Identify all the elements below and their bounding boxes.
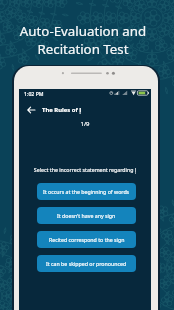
button[interactable]: It doesn't have any sign (37, 207, 136, 224)
button[interactable]: Back (24, 103, 37, 116)
button[interactable]: It occurs at the beginning of words (37, 183, 136, 200)
staticText: It occurs at the beginning of words (43, 188, 130, 195)
staticText: Recited correspond to the sign (49, 236, 125, 243)
staticText: 1:02 PM (24, 90, 44, 97)
button[interactable]: It can be skipped or pronounced (37, 255, 136, 272)
button[interactable]: Recited correspond to the sign (37, 231, 136, 248)
staticText: Auto-Evaluation and Recitation Test (0, 22, 170, 58)
staticText: It doesn't have any sign (57, 212, 116, 219)
staticText: The Rules of إ (42, 106, 82, 114)
staticText: It can be skipped or pronounced (46, 260, 127, 267)
staticText: 1/9 (19, 120, 151, 128)
staticText: Select the incorrect statement regarding… (19, 166, 151, 173)
